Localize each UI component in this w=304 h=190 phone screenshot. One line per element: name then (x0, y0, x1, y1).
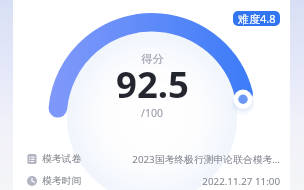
staticText: /100 (141, 106, 163, 120)
staticText: 模考时间 (42, 175, 82, 187)
staticText: 2022.11.27 11:00 (202, 175, 280, 188)
button[interactable]: 模考时间 (0, 174, 304, 188)
staticText: 模考试卷 (42, 153, 82, 165)
staticText: 得分 (141, 52, 164, 66)
button[interactable]: 模考试卷 (0, 152, 304, 166)
staticText: 2023国考终极行测申论联合模考… (132, 153, 280, 166)
staticText: 92.5 (116, 59, 189, 109)
button[interactable]: 难度4.8 (233, 11, 280, 26)
staticText: 难度4.8 (238, 11, 276, 26)
